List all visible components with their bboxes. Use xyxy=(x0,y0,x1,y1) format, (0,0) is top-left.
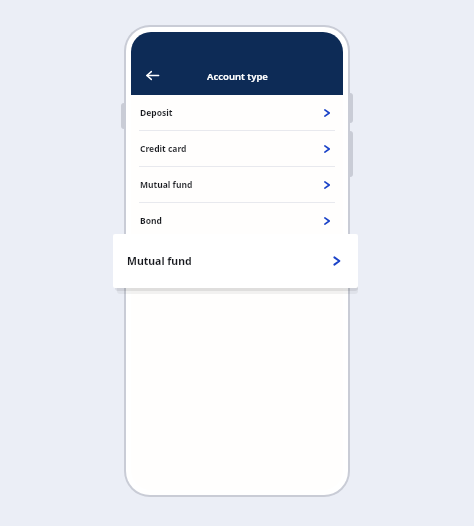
staticText: Account type xyxy=(207,70,268,83)
button[interactable]: Credit card xyxy=(131,131,343,166)
button[interactable]: Mutual fund xyxy=(131,167,343,202)
staticText: Mutual fund xyxy=(140,179,193,191)
staticText: Deposit xyxy=(140,107,173,119)
staticText: Bond xyxy=(140,215,162,227)
staticText: Mutual fund xyxy=(127,254,192,268)
button[interactable]: Deposit xyxy=(131,95,343,130)
button[interactable]: Back xyxy=(135,58,169,92)
button[interactable]: Mutual fund xyxy=(113,234,358,288)
staticText: Credit card xyxy=(140,143,187,155)
button[interactable]: Bond xyxy=(131,203,343,238)
